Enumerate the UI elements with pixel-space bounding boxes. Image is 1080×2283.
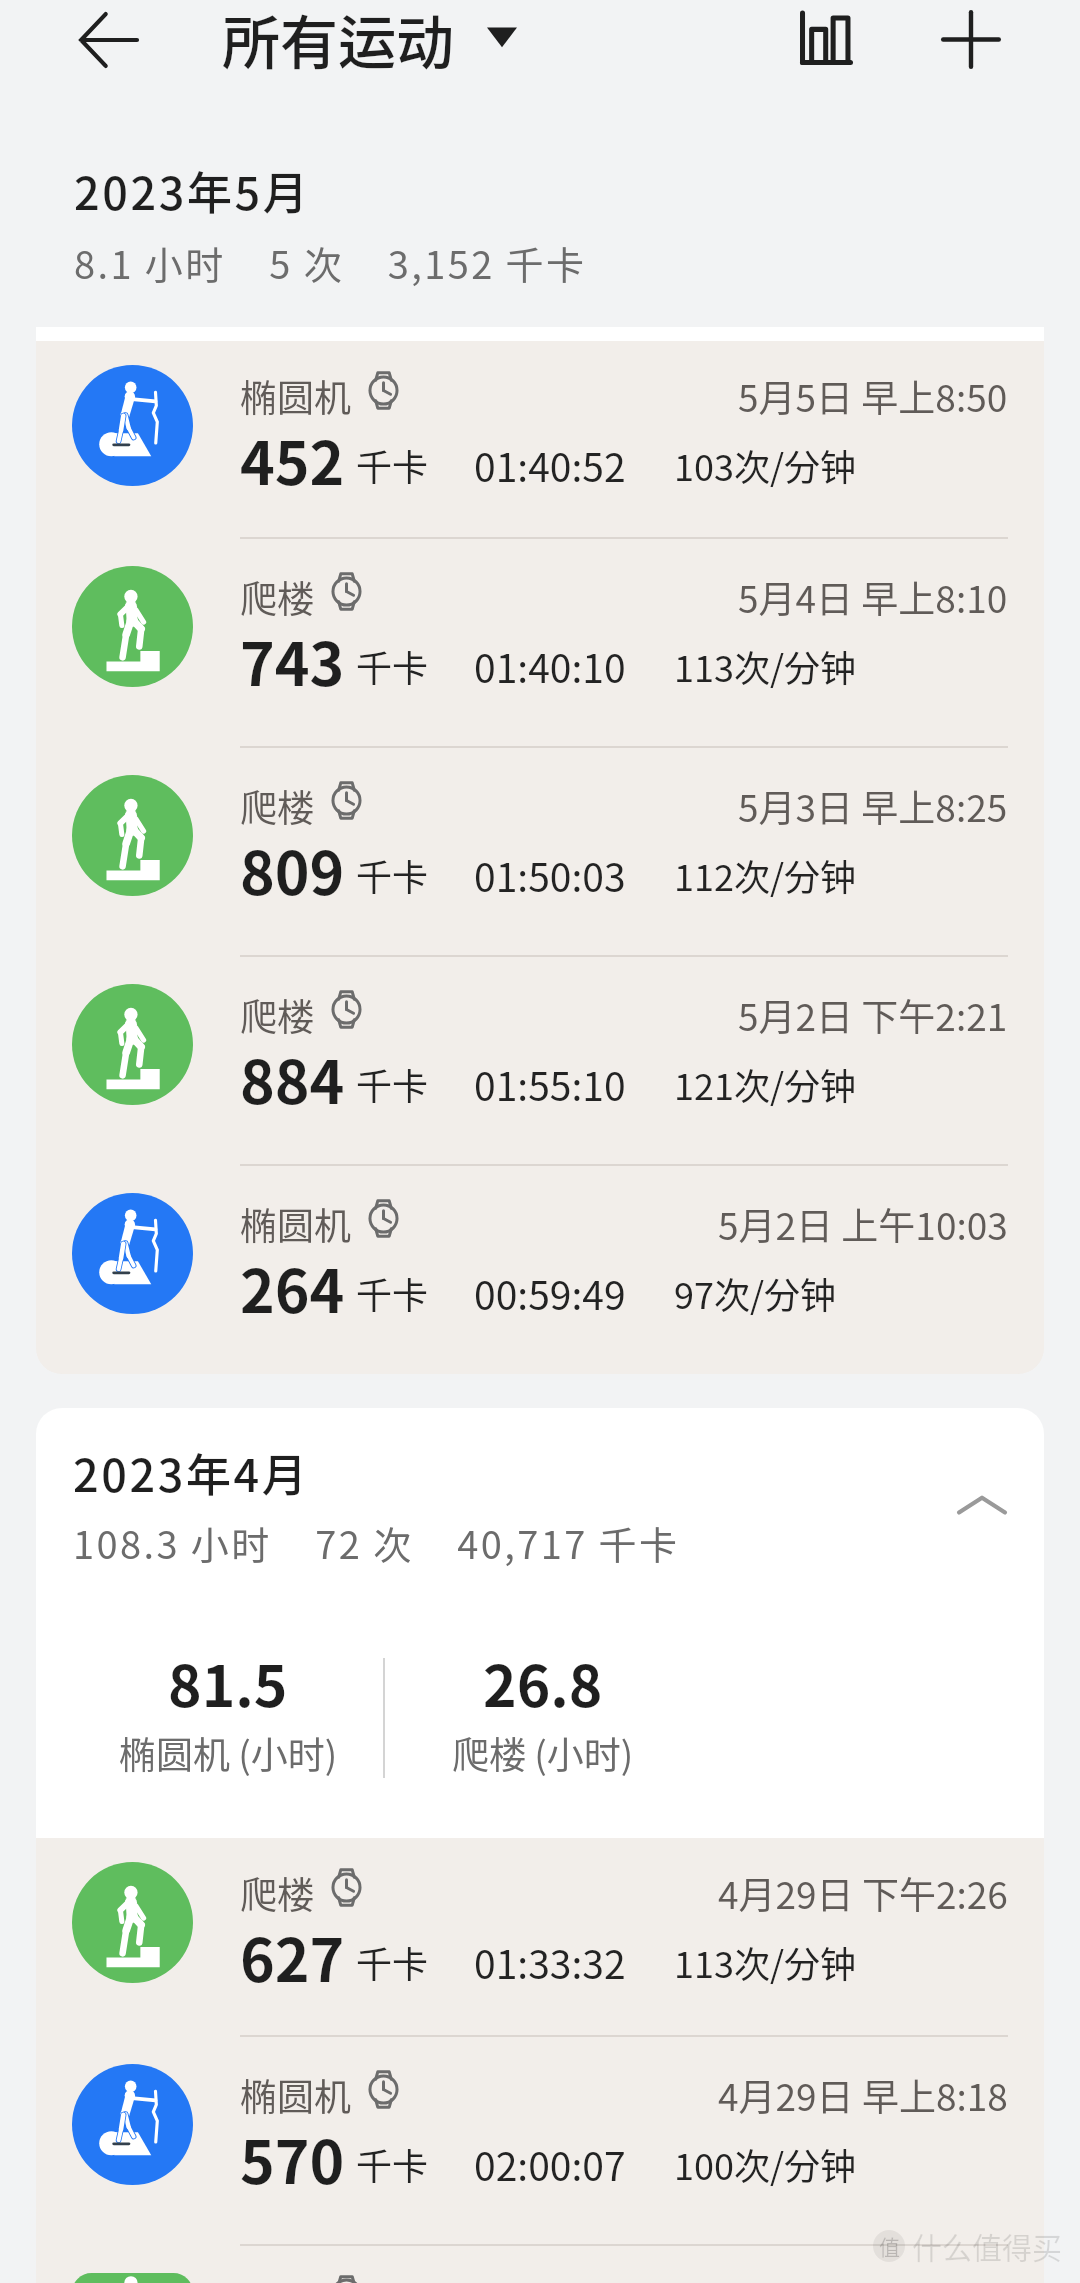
staticText: 椭圆机: [240, 369, 351, 417]
button[interactable]: Add: [913, 0, 1029, 83]
staticText: 4月29日 早上8:18: [718, 2068, 1008, 2116]
staticText: 4月29日 下午2:26: [718, 1866, 1008, 1914]
button[interactable]: 爬楼: [36, 1838, 1044, 2035]
button[interactable]: 椭圆机: [36, 341, 1044, 537]
staticText: 81.5: [168, 1641, 288, 1724]
staticText: 爬楼: [240, 1866, 314, 1914]
staticText: 00:59:49: [474, 1265, 626, 1321]
staticText: 5月2日 下午2:21: [738, 988, 1008, 1036]
staticText: 100次/分钟: [674, 2138, 857, 2190]
button[interactable]: 爬楼: [36, 955, 1044, 1164]
button[interactable]: 爬楼: [36, 537, 1044, 746]
button[interactable]: Back: [52, 0, 164, 84]
button[interactable]: 所有运动: [222, 0, 517, 81]
staticText: 627: [240, 1914, 345, 1999]
staticText: 112次/分钟: [674, 849, 857, 901]
staticText: 千卡: [356, 640, 429, 692]
staticText: 5月3日 早上8:25: [738, 779, 1008, 827]
staticText: 452: [240, 417, 345, 502]
staticText: 椭圆机: [240, 1197, 351, 1245]
staticText: 01:40:10: [474, 638, 626, 694]
staticText: 01:55:10: [474, 1056, 626, 1112]
staticText: 椭圆机: [240, 2068, 351, 2116]
button[interactable]: 椭圆机: [36, 2035, 1044, 2244]
staticText: 2023年4月: [73, 1440, 310, 1505]
staticText: 爬楼: [240, 570, 314, 618]
staticText: 千卡: [356, 849, 429, 901]
staticText: 千卡: [356, 1936, 429, 1988]
staticText: 02:00:07: [474, 2136, 626, 2192]
button[interactable]: 椭圆机: [36, 1164, 1044, 1374]
staticText: 570: [240, 2116, 345, 2201]
staticText: 113次/分钟: [674, 640, 857, 692]
staticText: 什么值得买: [912, 2224, 1062, 2267]
staticText: 千卡: [356, 1058, 429, 1110]
staticText: 5月4日 早上8:10: [738, 570, 1008, 618]
staticText: 2023年5月: [74, 158, 311, 223]
staticText: 26.8: [483, 1641, 603, 1724]
staticText: 5月5日 早上8:50: [738, 369, 1008, 417]
staticText: 爬楼: [240, 988, 314, 1036]
staticText: 113次/分钟: [674, 1936, 857, 1988]
staticText: 97次/分钟: [674, 1267, 837, 1319]
staticText: 884: [240, 1036, 345, 1121]
staticText: 264: [240, 1245, 345, 1330]
staticText: 121次/分钟: [674, 1058, 857, 1110]
staticText: 5月2日 上午10:03: [718, 1197, 1008, 1245]
button[interactable]: Statistics: [773, 0, 880, 83]
staticText: 千卡: [356, 439, 429, 491]
staticText: 809: [240, 827, 345, 912]
staticText: 千卡: [356, 1267, 429, 1319]
staticText: 值: [879, 2231, 900, 2261]
staticText: 108.3 小时 72 次 40,717 千卡: [73, 1515, 680, 1570]
staticText: 01:33:32: [474, 1934, 626, 1990]
staticText: 01:40:52: [474, 437, 626, 493]
staticText: 所有运动: [222, 0, 455, 81]
staticText: 椭圆机 (小时): [119, 1726, 338, 1780]
staticText: 01:50:03: [474, 847, 626, 903]
staticText: 103次/分钟: [674, 439, 857, 491]
staticText: 8.1 小时 5 次 3,152 千卡: [74, 235, 587, 290]
button[interactable]: 爬楼: [36, 746, 1044, 955]
staticText: 爬楼 (小时): [452, 1726, 634, 1780]
button[interactable]: 爬楼: [36, 2244, 1044, 2283]
button[interactable]: Collapse: [942, 1466, 1022, 1546]
staticText: 743: [240, 618, 345, 703]
staticText: 千卡: [356, 2138, 429, 2190]
staticText: 爬楼: [240, 779, 314, 827]
